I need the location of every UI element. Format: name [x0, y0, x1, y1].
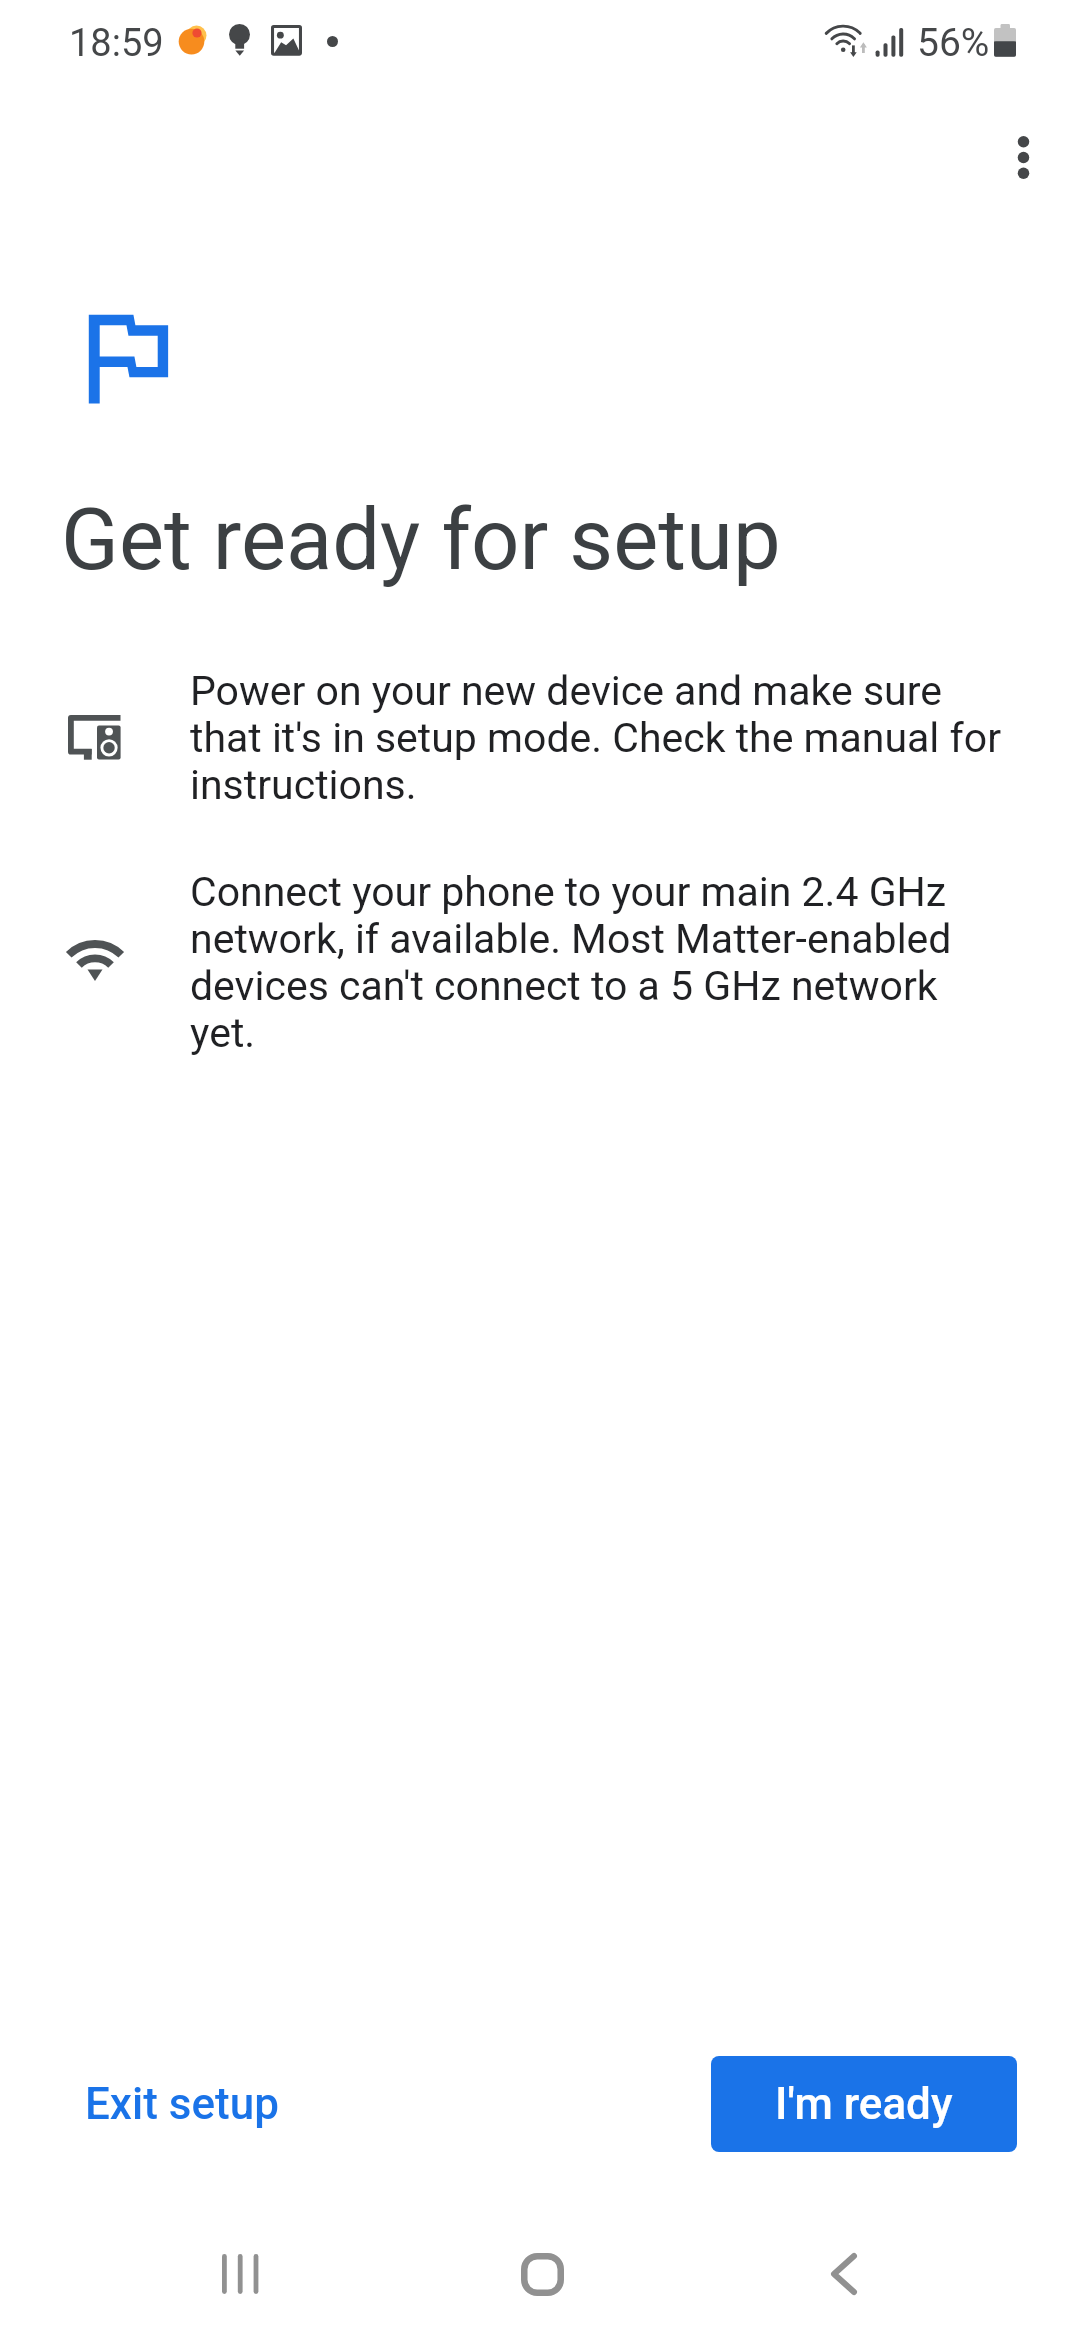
staticText: 56%: [917, 20, 990, 66]
staticText: I'm ready: [775, 2078, 953, 2130]
button[interactable]: Exit setup: [66, 2056, 298, 2152]
button[interactable]: I'm ready: [711, 2056, 1017, 2152]
staticText: Exit setup: [85, 2078, 279, 2130]
button[interactable]: Back: [772, 2224, 916, 2324]
staticText: Get ready for setup: [61, 490, 781, 590]
button[interactable]: Recent apps: [168, 2224, 312, 2324]
staticText: Power on your new device and make sure t…: [190, 668, 1006, 809]
button[interactable]: More options: [974, 108, 1071, 205]
staticText: 18:59: [69, 21, 164, 66]
staticText: Connect your phone to your main 2.4 GHz …: [190, 869, 1006, 1057]
button[interactable]: Home: [470, 2224, 614, 2324]
